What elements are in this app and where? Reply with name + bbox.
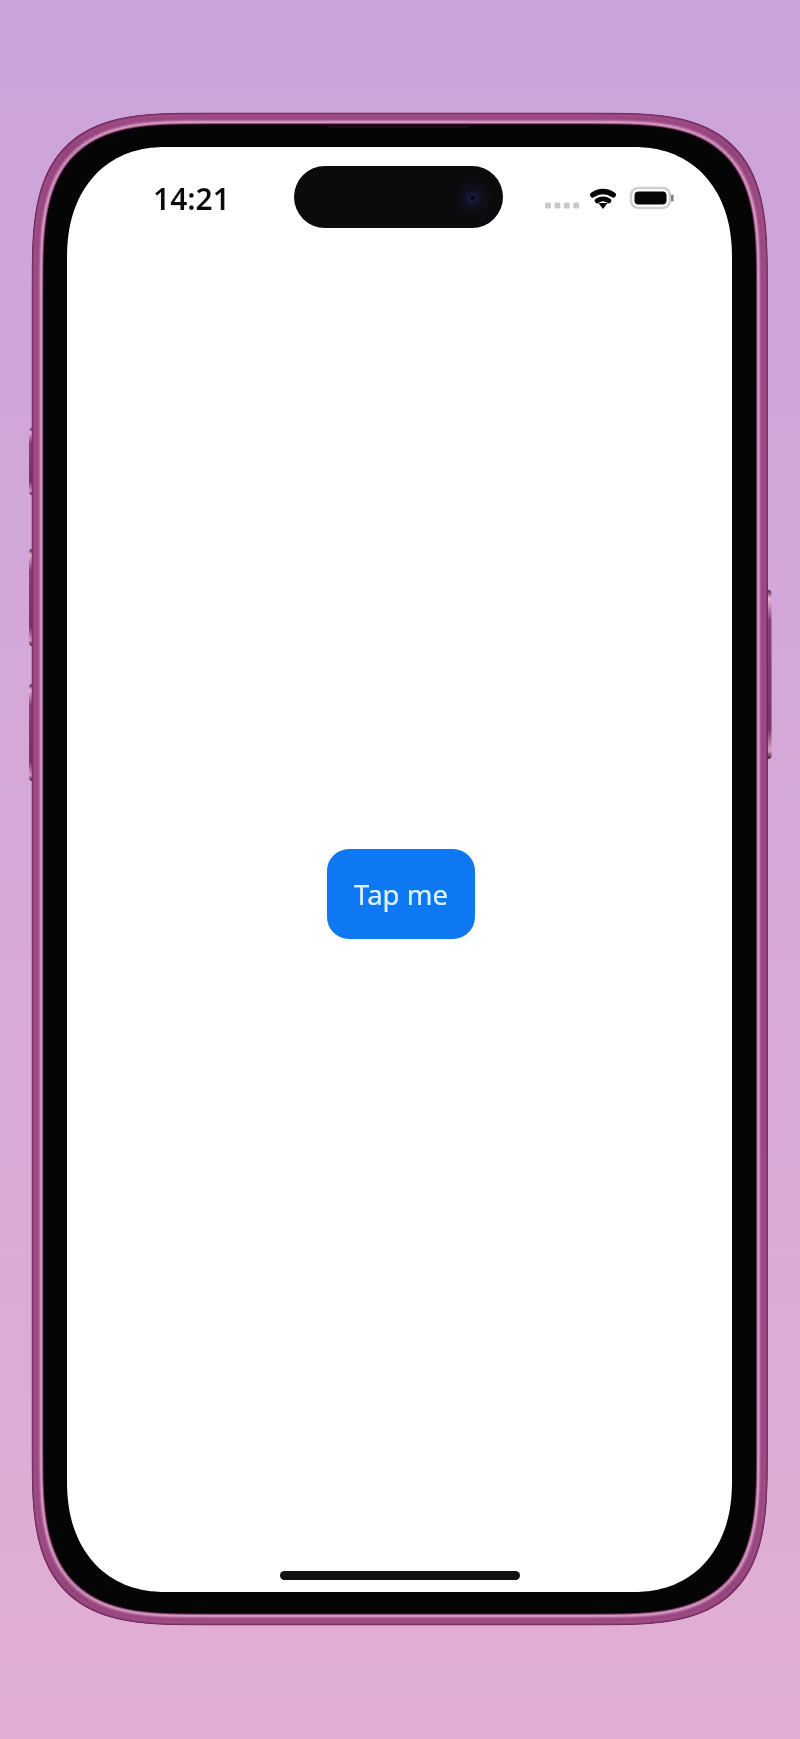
staticText: 14:21: [153, 178, 230, 219]
button[interactable]: Tap me: [327, 849, 475, 939]
staticText: Tap me: [354, 876, 448, 913]
